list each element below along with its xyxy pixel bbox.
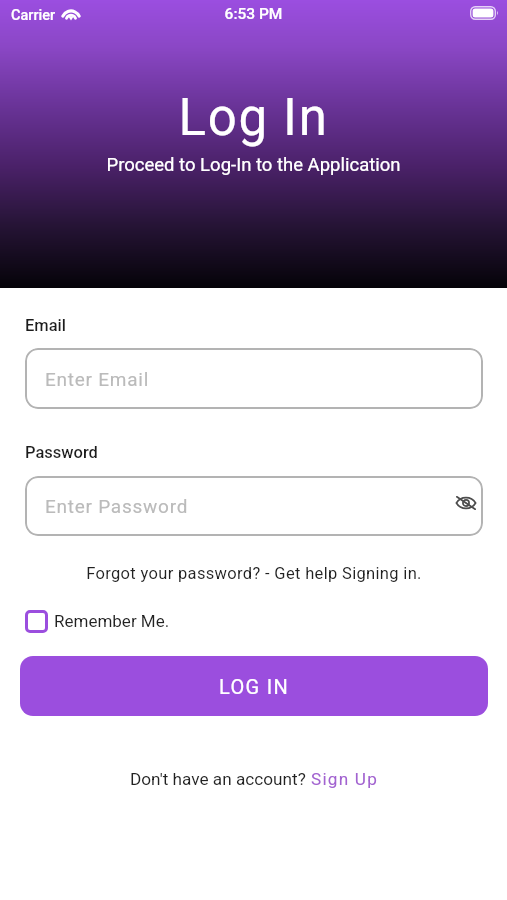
staticText: 6:53 PM [0, 5, 507, 23]
staticText: Carrier [11, 7, 56, 24]
staticText: Don't have an account? [130, 769, 311, 789]
button[interactable]: Remember Me. [25, 607, 170, 635]
staticText: LOG IN [219, 675, 289, 698]
staticText: Proceed to Log-In to the Application [0, 154, 507, 176]
staticText: Email [25, 316, 67, 335]
staticText: Remember Me. [54, 611, 170, 631]
button[interactable]: Forgot your password? - Get help Signing… [0, 562, 507, 584]
button[interactable]: Enter Email [25, 348, 483, 409]
button[interactable]: LOG IN [20, 656, 488, 716]
staticText: Forgot your password? - Get help Signing… [86, 564, 422, 583]
staticText: Password [25, 443, 98, 462]
staticText: Enter Password [45, 495, 189, 517]
button[interactable]: Enter Password [25, 476, 483, 536]
button[interactable]: Sign Up [311, 769, 378, 789]
staticText: Log In [0, 88, 507, 148]
button[interactable]: Show password [453, 490, 479, 516]
staticText: Enter Email [45, 368, 150, 390]
